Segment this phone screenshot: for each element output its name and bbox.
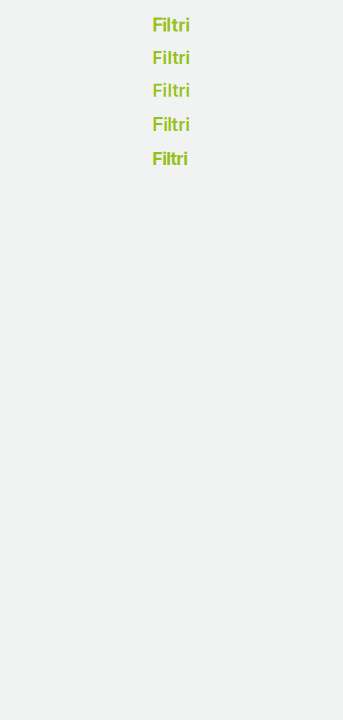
staticText: Filtri: [152, 14, 189, 36]
staticText: Filtri: [152, 80, 190, 101]
staticText: Filtri: [152, 147, 187, 169]
staticText: Filtri: [152, 113, 189, 135]
staticText: Filtri: [152, 48, 190, 68]
